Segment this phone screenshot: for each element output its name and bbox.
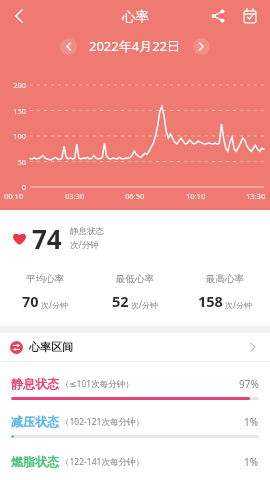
button[interactable]: Back <box>4 1 34 31</box>
button[interactable]: 心率区间 <box>0 333 270 361</box>
button[interactable]: Calendar <box>236 2 264 30</box>
staticText: 最低心率 <box>116 273 154 285</box>
staticText: 最高心率 <box>206 273 244 285</box>
staticText: 次/分钟 <box>225 299 252 310</box>
staticText: 13:30 <box>246 191 266 201</box>
staticText: 次/分钟 <box>41 299 68 310</box>
staticText: 1% <box>244 415 259 429</box>
staticText: 2022年4月22日 <box>89 37 181 55</box>
staticText: 静息状态 <box>70 226 104 237</box>
staticText: 74 <box>32 221 62 256</box>
staticText: 200 <box>4 80 26 90</box>
staticText: 静息状态 <box>11 376 59 391</box>
staticText: （≤101次每分钟） <box>61 378 134 390</box>
staticText: 100 <box>4 131 26 141</box>
staticText: 减压状态 <box>11 414 59 429</box>
staticText: 00:10 <box>4 191 24 201</box>
staticText: 150 <box>4 106 26 116</box>
staticText: 心率 <box>122 8 149 25</box>
button[interactable]: 静息状态 <box>0 362 270 400</box>
button[interactable]: 减压状态 <box>0 400 270 438</box>
staticText: 平均心率 <box>26 273 64 285</box>
staticText: 1% <box>244 455 259 469</box>
button[interactable]: Previous day <box>60 38 77 55</box>
staticText: （122-141次每分钟） <box>61 456 144 468</box>
staticText: 97% <box>239 377 259 391</box>
button[interactable]: Share <box>204 2 232 30</box>
staticText: 燃脂状态 <box>11 454 59 469</box>
staticText: 06:50 <box>125 191 145 201</box>
staticText: 0 <box>4 182 26 192</box>
staticText: 03:30 <box>65 191 85 201</box>
staticText: 52 <box>112 291 129 311</box>
staticText: 心率区间 <box>29 340 73 354</box>
staticText: 10:10 <box>186 191 206 201</box>
button[interactable]: 燃脂状态 <box>0 438 270 469</box>
button[interactable]: Next day <box>193 38 210 55</box>
staticText: 158 <box>198 291 223 311</box>
staticText: 50 <box>4 157 26 167</box>
staticText: （102-121次每分钟） <box>61 416 144 428</box>
staticText: 次/分钟 <box>70 239 99 251</box>
staticText: 70 <box>22 291 39 311</box>
staticText: 次/分钟 <box>131 299 158 310</box>
